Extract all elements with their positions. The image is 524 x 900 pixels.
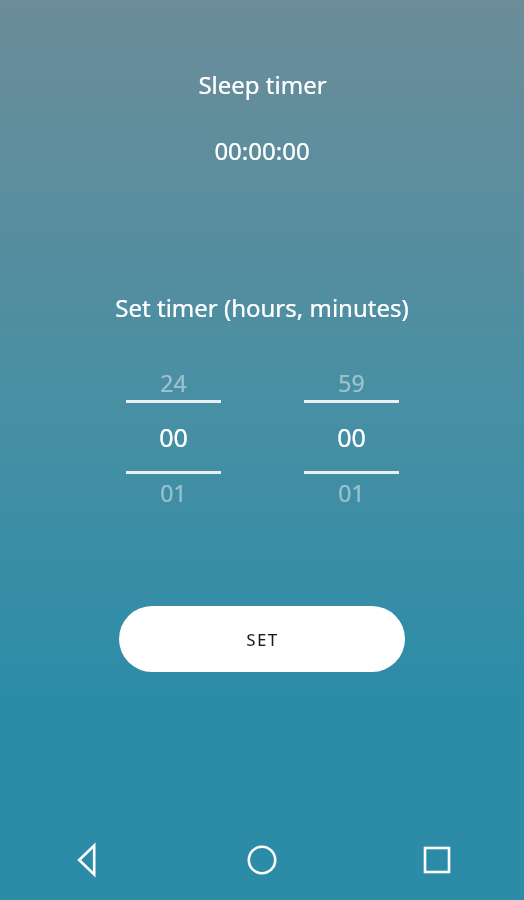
button[interactable]: Back [0, 820, 174, 900]
button[interactable]: 00 [125, 403, 221, 471]
staticText: 00 [159, 420, 188, 454]
staticText: Set timer (hours, minutes) [115, 291, 409, 324]
button[interactable]: 01 [125, 477, 221, 507]
button[interactable]: Home [174, 820, 349, 900]
button[interactable]: 00 [303, 403, 399, 471]
staticText: 00 [337, 420, 366, 454]
staticText: 24 [160, 367, 187, 397]
staticText: 01 [160, 477, 187, 507]
staticText: 59 [338, 367, 365, 397]
staticText: SET [246, 628, 279, 651]
button[interactable]: 01 [303, 477, 399, 507]
button[interactable]: SET [119, 606, 405, 672]
button[interactable]: 24 [125, 367, 221, 397]
staticText: 00:00:00 [214, 134, 310, 167]
button[interactable]: 59 [303, 367, 399, 397]
button[interactable]: Recent apps [349, 820, 524, 900]
staticText: Sleep timer [198, 68, 327, 101]
staticText: 01 [338, 477, 365, 507]
